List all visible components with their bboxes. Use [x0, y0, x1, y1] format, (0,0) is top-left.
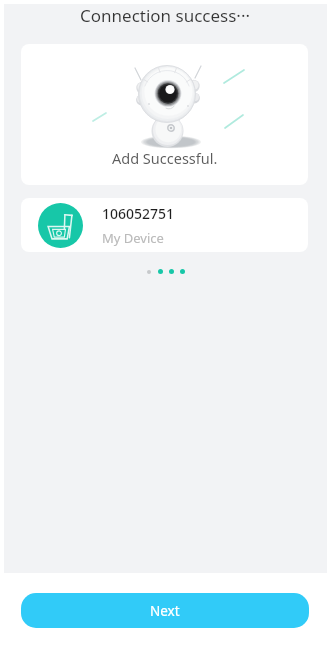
button[interactable]: Step 2: [158, 269, 163, 274]
staticText: My Device: [102, 229, 164, 247]
staticText: Add Successful.: [112, 148, 218, 168]
button[interactable]: Next: [21, 593, 309, 628]
staticText: Next: [150, 602, 180, 620]
staticText: Connection success···: [80, 4, 251, 27]
button[interactable]: Step 3: [169, 269, 174, 274]
button[interactable]: Step 4: [180, 269, 185, 274]
other: Camera added illustration: [21, 44, 308, 185]
staticText: 106052751: [102, 204, 175, 223]
button[interactable]: 106052751: [21, 198, 308, 252]
button[interactable]: Step 1: [147, 270, 151, 274]
